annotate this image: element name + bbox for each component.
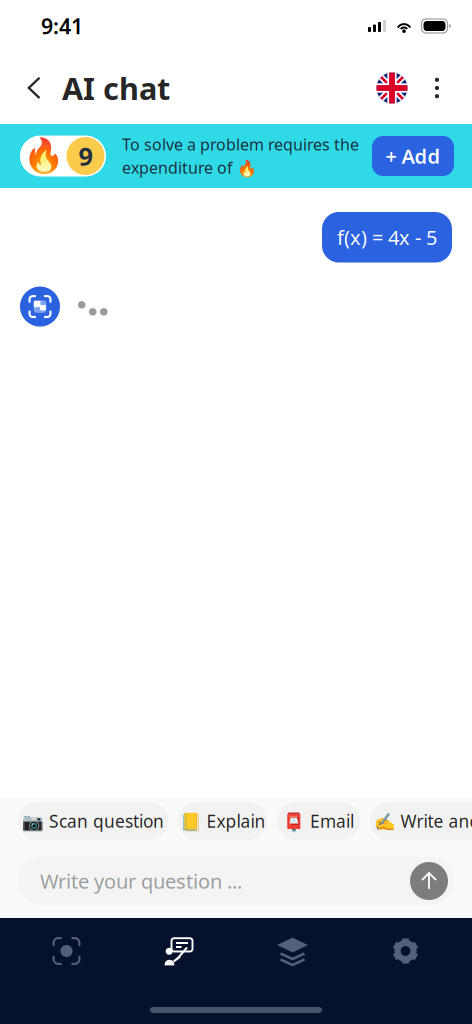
button[interactable]: 📷 Scan question	[18, 802, 168, 840]
staticText: + Add	[385, 143, 440, 169]
button[interactable]: More options	[420, 66, 454, 110]
staticText: 9:41	[41, 12, 83, 40]
staticText: 📒 Explain	[179, 809, 265, 832]
button[interactable]: Language	[372, 66, 412, 110]
button[interactable]: Settings	[349, 923, 462, 979]
staticText: 📷 Scan question	[22, 809, 164, 832]
staticText: 🔥	[23, 137, 65, 175]
button[interactable]: Scan	[10, 923, 123, 979]
staticText: f(x) = 4x - 5	[337, 224, 437, 251]
staticText: To solve a problem requires the	[122, 134, 359, 155]
button[interactable]: Library	[236, 923, 349, 979]
button[interactable]: 📮 Email	[277, 802, 360, 840]
staticText: 9	[78, 139, 92, 173]
staticText: ✍️ Write and edit	[373, 809, 472, 832]
button[interactable]: AI chat	[123, 923, 236, 979]
button[interactable]: 📒 Explain	[178, 802, 267, 840]
staticText: Write your question ...	[40, 868, 242, 894]
button[interactable]: Back	[19, 66, 49, 110]
button[interactable]: Send	[410, 862, 448, 900]
button[interactable]: + Add	[372, 136, 454, 176]
button[interactable]: ✍️ Write and edit	[370, 802, 472, 840]
staticText: 📮 Email	[283, 809, 354, 832]
staticText: expenditure of 🔥	[122, 157, 257, 178]
staticText: AI chat	[62, 68, 170, 108]
